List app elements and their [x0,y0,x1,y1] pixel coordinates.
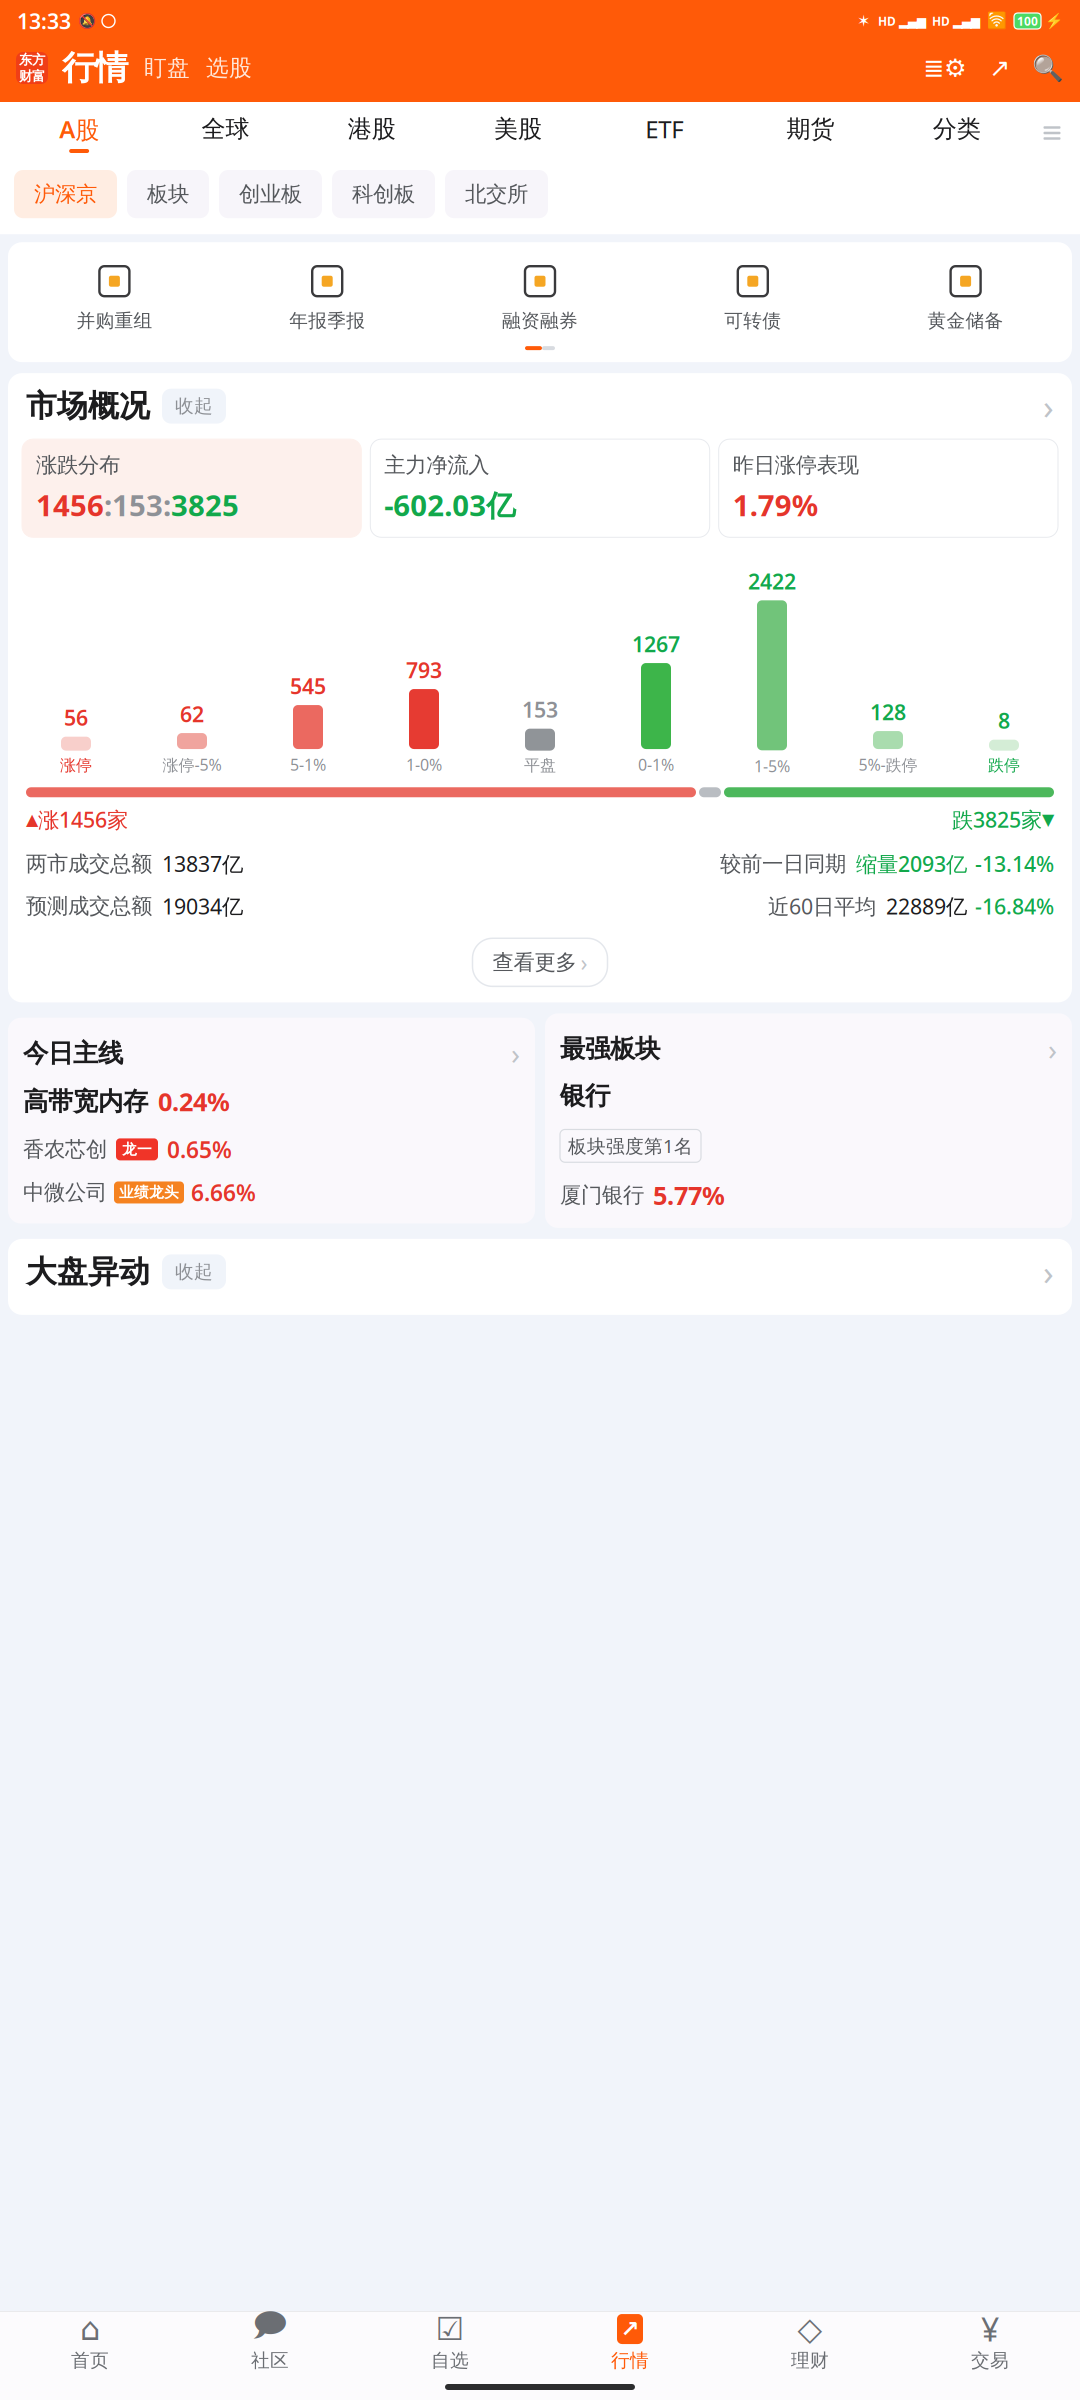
staticText: 5.77% [653,1178,725,1212]
button[interactable]: 大盘异动 [8,1239,1072,1305]
button[interactable]: 美股 [445,114,591,152]
staticText: 选股 [206,54,252,82]
staticText: 56 [64,703,88,732]
button[interactable]: 列表设置 [923,54,967,82]
staticText: 香农芯创 [23,1136,107,1162]
staticText: 科创板 [352,181,415,207]
staticText: HD ▂▄▆ [932,13,980,29]
button[interactable]: 最强板块 [545,1013,1072,1228]
staticText: 🔕 [78,13,96,29]
staticText: 2422 [748,567,796,595]
staticText: 153 [112,485,163,524]
staticText: 收起 [175,395,213,418]
staticText: 年报季报 [289,309,365,332]
button[interactable]: 盯盘 [144,54,190,82]
button[interactable]: 市场概况 [8,373,1072,439]
button[interactable]: 期货 [737,114,884,152]
button[interactable]: 年报季报 [221,262,434,332]
staticText: 100 [1017,13,1038,29]
button[interactable]: 沪深京 [14,170,117,218]
staticText: 6.66% [191,1177,256,1207]
staticText: › [580,947,587,977]
staticText: 1.79% [733,485,818,524]
staticText: 美股 [494,114,542,144]
staticText: 预测成交总额 [26,893,152,919]
button[interactable]: 板块 [127,170,209,218]
button[interactable]: 🗩 [180,2314,360,2372]
staticText: ◇ [797,2311,822,2347]
button[interactable]: 港股 [299,114,445,152]
button[interactable]: 查看更多 [472,938,607,986]
staticText: 🔍 [1032,53,1064,82]
staticText: 1-0% [406,754,442,775]
staticText: 今日主线 [23,1038,123,1069]
staticText: 中微公司 [23,1179,107,1206]
button[interactable]: 今日主线 [8,1018,535,1223]
staticText: 1456 [36,485,104,524]
button[interactable]: A股 [6,113,152,153]
staticText: : [163,485,171,524]
staticText: 黄金储备 [928,309,1004,332]
button[interactable]: 搜索 [1032,53,1064,82]
staticText: 查看更多 [492,949,576,975]
staticText: ☑ [435,2311,464,2347]
button[interactable]: ☑ [360,2314,540,2372]
staticText: 545 [290,672,326,700]
button[interactable]: ⌂ [0,2314,180,2372]
staticText: 收起 [175,1260,213,1283]
button[interactable]: ↗ [540,2314,720,2372]
staticText: 业绩龙头 [119,1183,179,1201]
staticText: 港股 [348,114,396,144]
staticText: 平盘 [524,756,556,775]
staticText: 昨日涨停表现 [733,452,859,478]
staticText: 3825 [171,485,239,524]
staticText: 62 [180,700,204,728]
button[interactable]: ¥ [900,2314,1080,2372]
button[interactable]: 全球 [152,114,299,152]
button[interactable]: 黄金储备 [859,262,1072,332]
button[interactable]: ◇ [720,2314,900,2372]
staticText: 793 [406,656,442,684]
button[interactable]: ETF [591,113,737,153]
staticText: ✶ [857,12,870,30]
staticText: 缩量2093亿 [856,850,967,878]
button[interactable]: 更多分类 [1030,113,1074,153]
button[interactable]: 选股 [206,54,252,82]
staticText: 涨停 [60,756,92,775]
button[interactable]: 融资融券 [434,262,646,332]
button[interactable]: 并购重组 [8,262,221,332]
staticText: 19034亿 [162,892,243,920]
staticText: 跌停 [988,756,1020,775]
staticText: 沪深京 [34,181,97,207]
staticText: 龙一 [122,1140,152,1158]
staticText: 近60日平均 [768,892,876,920]
staticText: ≣⚙ [923,54,967,82]
staticText: 创业板 [239,181,302,207]
staticText: › [511,1034,520,1073]
staticText: 🛜 [987,12,1007,30]
staticText: 13:33 [17,7,71,35]
button[interactable]: 可转债 [646,262,859,332]
staticText: 5%-跌停 [858,754,917,775]
staticText: 涨跌分布 [36,452,120,478]
staticText: 128 [870,698,906,726]
staticText: 市场概况 [26,387,150,425]
staticText: 22889亿 [886,892,967,920]
staticText: 分类 [933,114,981,144]
staticText: 涨1456家 [38,805,128,834]
staticText: 东方 [19,52,45,68]
staticText: : [104,485,112,524]
staticText: › [1048,1029,1057,1068]
button[interactable]: 分类 [884,114,1030,152]
staticText: 1-5% [754,755,790,776]
button[interactable]: 北交所 [445,170,548,218]
staticText: ETF [645,113,683,145]
staticText: 首页 [71,2349,109,2372]
button[interactable]: 分享 [989,54,1010,82]
staticText: 较前一日同期 [720,851,846,877]
staticText: -13.14% [975,850,1054,878]
button[interactable]: 科创板 [332,170,435,218]
button[interactable]: 创业板 [219,170,322,218]
staticText: 0.24% [158,1085,230,1118]
staticText: -16.84% [975,892,1054,920]
